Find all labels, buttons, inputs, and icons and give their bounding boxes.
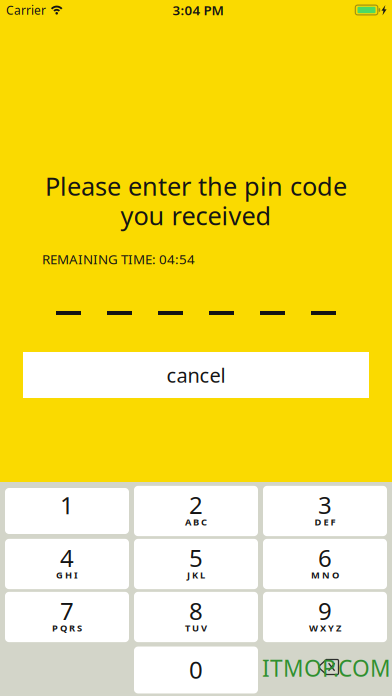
button[interactable]: 4 [5,541,129,587]
button[interactable]: 9 [263,594,387,640]
button[interactable]: 0 [134,647,258,693]
button[interactable]: cancel [23,352,369,398]
staticText: 0 [189,654,203,685]
button[interactable]: 2 [134,488,258,534]
staticText: 9 [318,595,332,627]
staticText: 6 [318,542,332,574]
staticText: 3:04 PM [172,1,223,19]
staticText: T U V [185,622,207,634]
staticText: P Q R S [52,622,82,634]
staticText: REMAINING TIME: 04:54 [42,250,195,268]
button[interactable]: 7 [5,594,129,640]
staticText: Please enter the pin code [45,169,347,203]
staticText: Carrier [6,2,46,18]
staticText: you received [120,199,271,232]
staticText: W X Y Z [309,622,341,634]
staticText: 2 [189,489,203,521]
staticText: 8 [189,595,203,627]
button[interactable]: 8 [134,594,258,640]
button[interactable]: 5 [134,541,258,587]
staticText: ITMOP.COM [262,653,391,683]
button[interactable]: 3 [263,488,387,534]
staticText: G H I [56,569,78,581]
staticText: 7 [60,595,74,627]
button[interactable]: Delete [263,647,387,693]
staticText: cancel [166,362,225,388]
button[interactable]: 6 [263,541,387,587]
staticText: A B C [185,516,207,528]
staticText: 4 [60,542,74,574]
staticText: 5 [189,542,203,574]
staticText: J K L [187,569,205,581]
staticText: M N O [311,569,339,581]
staticText: D E F [314,516,335,528]
staticText: 1 [60,489,74,521]
button[interactable]: 1 [5,488,129,534]
staticText: 3 [318,489,332,521]
